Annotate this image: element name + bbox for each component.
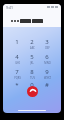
staticText: TUV (30, 76, 35, 80)
button[interactable]: * (11, 81, 23, 89)
button[interactable]: 9 (41, 68, 53, 80)
button[interactable]: 1 (11, 38, 23, 46)
button[interactable]: Call (27, 86, 38, 97)
staticText: # (45, 81, 49, 89)
button[interactable]: 0 (26, 81, 38, 93)
staticText: 9:41 (6, 5, 13, 10)
button[interactable]: 6 (41, 53, 53, 65)
staticText: 2 (30, 38, 34, 46)
staticText: * (15, 81, 19, 89)
staticText: WXYZ (44, 76, 51, 80)
staticText: 3 (45, 38, 49, 46)
button[interactable]: 7 (11, 68, 23, 80)
staticText: GHI (15, 61, 20, 65)
button[interactable]: 3 (41, 38, 53, 50)
staticText: ABC (30, 46, 35, 50)
button[interactable]: # (41, 81, 53, 89)
staticText: PQRS (14, 76, 21, 80)
staticText: 4 (15, 53, 19, 61)
staticText: 5 (30, 53, 34, 61)
button[interactable]: 8 (26, 68, 38, 80)
staticText: 8 (30, 68, 34, 76)
staticText: 9 (45, 68, 49, 76)
staticText: 7 (15, 68, 19, 76)
staticText: DEF (45, 46, 50, 50)
button[interactable]: 2 (26, 38, 38, 50)
button[interactable]: 5 (26, 53, 38, 65)
staticText: 0 (30, 81, 34, 89)
staticText: MNO (44, 61, 51, 65)
staticText: 6 (45, 53, 49, 61)
staticText: 1 (15, 38, 19, 46)
staticText: + (31, 89, 33, 93)
staticText: JKL (30, 61, 34, 65)
button[interactable]: 4 (11, 53, 23, 65)
